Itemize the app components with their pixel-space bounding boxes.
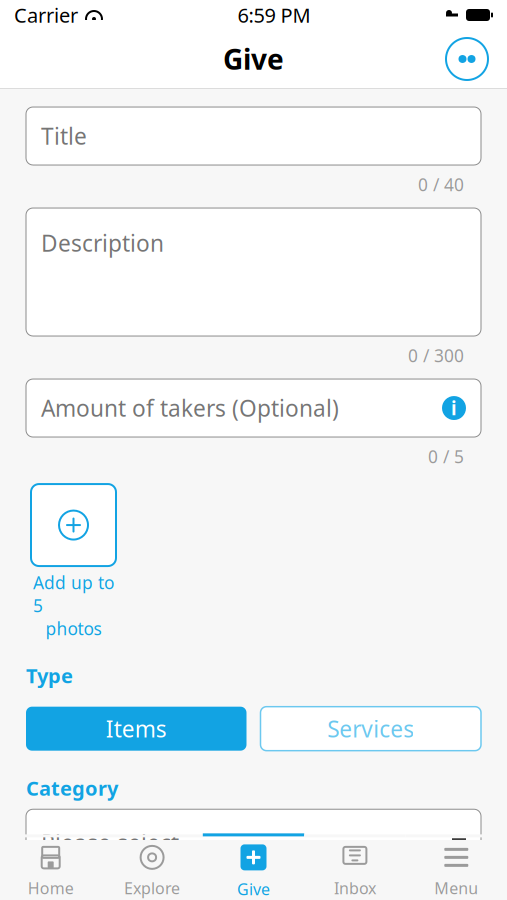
- staticText: Menu: [434, 877, 478, 899]
- button[interactable]: Explore: [101, 840, 203, 900]
- button[interactable]: Amount of takers (Optional): [26, 379, 481, 437]
- staticText: Home: [28, 877, 74, 899]
- staticText: photos: [45, 617, 101, 640]
- button[interactable]: Description: [26, 208, 481, 336]
- staticText: 6:59 PM: [237, 2, 310, 28]
- button[interactable]: Services: [260, 707, 481, 751]
- staticText: Category: [26, 775, 118, 801]
- button[interactable]: Menu: [406, 840, 507, 900]
- staticText: Title: [41, 121, 87, 151]
- staticText: Add up to 5: [33, 571, 114, 617]
- staticText: Condition: [26, 890, 125, 900]
- staticText: Give: [237, 878, 270, 900]
- staticText: Amount of takers (Optional): [41, 393, 339, 423]
- staticText: Carrier: [14, 2, 78, 28]
- staticText: i: [451, 396, 457, 420]
- button[interactable]: Profile: [443, 35, 491, 83]
- staticText: Type: [26, 662, 73, 689]
- staticText: Items: [106, 714, 167, 744]
- staticText: Inbox: [334, 877, 376, 899]
- staticText: Give: [223, 40, 284, 78]
- staticText: Please select...: [41, 828, 197, 858]
- button[interactable]: Give: [203, 840, 304, 900]
- staticText: 0 / 5: [428, 445, 464, 468]
- staticText: 0 / 300: [408, 344, 464, 367]
- staticText: Services: [327, 714, 414, 744]
- button[interactable]: Home: [0, 840, 101, 900]
- button[interactable]: Items: [26, 707, 246, 751]
- button[interactable]: Inbox: [304, 840, 406, 900]
- button[interactable]: Please select...: [26, 809, 481, 876]
- button[interactable]: Add photos: [31, 484, 116, 566]
- staticText: Explore: [124, 877, 180, 899]
- button[interactable]: Title: [26, 107, 481, 165]
- staticText: 0 / 40: [418, 173, 464, 196]
- staticText: Description: [41, 228, 164, 258]
